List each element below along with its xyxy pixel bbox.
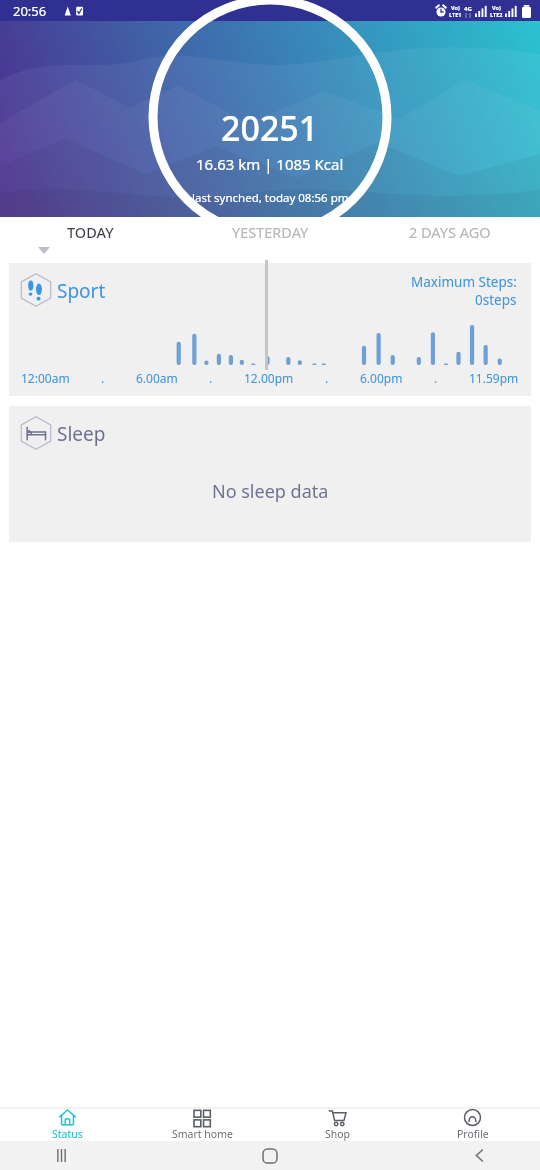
button[interactable]: 2 DAYS AGO (360, 217, 540, 246)
staticText: . (325, 370, 329, 386)
staticText: 6.00am (136, 370, 178, 386)
button[interactable]: YESTERDAY (180, 217, 360, 246)
staticText: Maximum Steps: (411, 273, 517, 291)
staticText: 11.59pm (469, 370, 519, 386)
staticText: LTE2 (490, 11, 503, 18)
button[interactable]: Sport (9, 263, 531, 396)
staticText: Smart home (172, 1127, 233, 1141)
button[interactable]: Recents (46, 1141, 76, 1170)
staticText: 16.63 km | 1085 Kcal (196, 154, 344, 174)
staticText: TODAY (67, 222, 114, 242)
staticText: 20251 (221, 105, 319, 151)
staticText: Vo) (451, 4, 460, 11)
staticText: 4G (464, 5, 472, 13)
staticText: 2 DAYS AGO (409, 222, 491, 242)
staticText: No sleep data (212, 479, 329, 504)
staticText: . (209, 370, 213, 386)
staticText: 12.00pm (244, 370, 294, 386)
button[interactable]: Sleep (9, 406, 531, 542)
staticText: Profile (457, 1127, 489, 1141)
staticText: Shop (325, 1127, 351, 1141)
staticText: Vo) (492, 4, 501, 11)
staticText: Status (52, 1127, 83, 1141)
staticText: 6.00pm (360, 370, 403, 386)
staticText: last synched, today 08:56 pm (192, 190, 349, 206)
staticText: . (434, 370, 438, 386)
button[interactable]: TODAY (0, 217, 180, 246)
button[interactable]: Profile (405, 1108, 540, 1141)
button[interactable]: Status (0, 1108, 135, 1141)
button[interactable]: Smart home (135, 1108, 270, 1141)
staticText: 0steps (475, 291, 517, 309)
staticText: . (101, 370, 105, 386)
staticText: YESTERDAY (232, 222, 309, 242)
button[interactable]: Shop (270, 1108, 405, 1141)
staticText: 12:00am (21, 370, 70, 386)
staticText: Sport (57, 278, 106, 304)
button[interactable]: Back (464, 1141, 494, 1170)
button[interactable]: Home (255, 1141, 285, 1170)
staticText: Sleep (57, 421, 106, 447)
staticText: LTE1 (449, 11, 462, 18)
staticText: 20:56 (13, 2, 47, 20)
